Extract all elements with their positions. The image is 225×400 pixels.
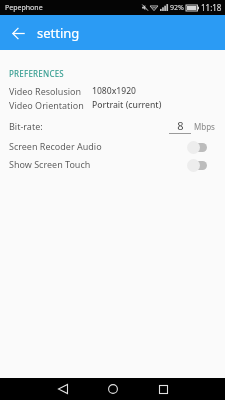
button[interactable]: 8: [169, 118, 191, 134]
staticText: Screen Recoder Audio: [9, 140, 187, 152]
button[interactable]: Navigate up: [6, 21, 30, 45]
staticText: Bit-rate:: [9, 120, 43, 132]
button[interactable]: Screen Recoder Audio: [0, 139, 225, 153]
button[interactable]: Back: [43, 378, 83, 400]
staticText: setting: [37, 24, 80, 42]
staticText: Show Screen Touch: [9, 158, 187, 170]
button[interactable]: Recent apps: [143, 378, 183, 400]
button[interactable]: Video Resolusion: [0, 85, 225, 97]
staticText: Mbps: [194, 121, 215, 132]
staticText: Pepephone: [5, 3, 43, 13]
button[interactable]: Video Orientation: [0, 99, 225, 111]
staticText: Portrait (current): [92, 99, 162, 111]
staticText: Video Resolusion: [9, 85, 82, 97]
staticText: 1080x1920: [92, 85, 136, 97]
staticText: 11:18: [201, 2, 222, 13]
button[interactable]: Home: [93, 378, 133, 400]
staticText: 8: [177, 118, 184, 133]
staticText: Video Orientation: [9, 99, 84, 111]
button[interactable]: Show Screen Touch: [0, 157, 225, 171]
staticText: 92%: [170, 3, 184, 13]
staticText: PREFERENCES: [9, 68, 64, 79]
